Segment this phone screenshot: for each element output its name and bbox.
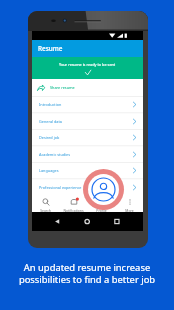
staticText: An updated resume increase possibilities… — [0, 261, 174, 286]
button[interactable]: General data — [32, 113, 143, 130]
button[interactable]: Share resume — [32, 79, 143, 96]
staticText: More — [125, 208, 134, 212]
staticText: Profile — [96, 208, 107, 212]
button[interactable]: Notifications — [60, 195, 87, 212]
button[interactable]: More — [116, 195, 143, 212]
button[interactable]: Search — [32, 195, 59, 212]
button[interactable]: Profile — [88, 195, 115, 212]
staticText: Introduction — [39, 102, 62, 107]
button[interactable]: Desired job — [32, 129, 143, 146]
staticText: Academic studies — [39, 152, 71, 157]
staticText: Resume — [38, 44, 63, 53]
staticText: Desired job — [39, 135, 60, 140]
button[interactable]: Introduction — [32, 96, 143, 113]
button[interactable]: Academic studies — [32, 146, 143, 163]
button[interactable]: Professional experience — [32, 179, 143, 196]
staticText: Your resume is ready to be sent — [59, 62, 116, 67]
staticText: Notifications — [63, 208, 84, 212]
staticText: Languages — [39, 168, 59, 173]
other: Profile — [91, 177, 116, 202]
staticText: General data — [39, 119, 62, 124]
staticText: Search — [40, 208, 51, 212]
button[interactable]: Languages — [32, 162, 143, 179]
staticText: Professional experience — [39, 185, 82, 190]
staticText: Share resume — [50, 85, 75, 90]
